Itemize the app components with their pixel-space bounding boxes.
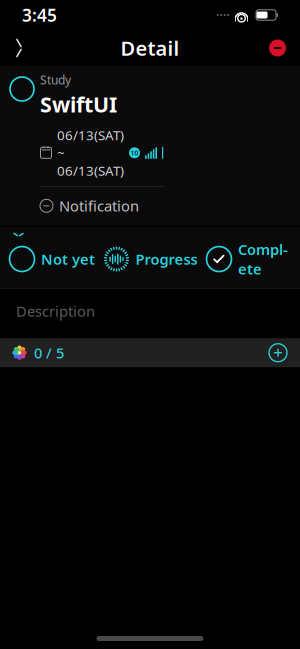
button[interactable]: Delete xyxy=(258,30,297,65)
staticText: Progress xyxy=(135,249,197,269)
staticText: 3:45 xyxy=(22,3,57,26)
button[interactable]: Not yet xyxy=(9,246,95,272)
button[interactable]: Toggle status xyxy=(0,66,40,105)
staticText: 10 xyxy=(130,148,138,157)
button[interactable]: Progress xyxy=(103,246,197,272)
button[interactable]: Add photo xyxy=(260,339,296,367)
staticText: SwiftUI xyxy=(40,90,117,118)
staticText: 06/13(SAT) ~ 06/13(SAT) xyxy=(57,126,124,179)
staticText: Description xyxy=(16,301,95,321)
staticText: Complete xyxy=(238,240,288,279)
staticText: Study xyxy=(40,72,71,88)
staticText: Not yet xyxy=(41,249,95,269)
staticText: 0 / 5 xyxy=(34,343,64,362)
staticText: Detail xyxy=(120,35,179,61)
button[interactable]: Back xyxy=(3,30,35,66)
staticText: Notification xyxy=(59,196,139,216)
button[interactable]: Complete xyxy=(206,240,288,279)
